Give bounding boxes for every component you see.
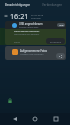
staticText: Anzeigen oder entfernen — [20, 53, 44, 56]
button[interactable]: Gesperrt — [6, 97, 14, 105]
staticText: Dateien übertragen — [19, 26, 39, 29]
button[interactable]: Teilen — [56, 53, 65, 59]
staticText: Sonntag — [31, 16, 41, 19]
button[interactable]: Startseite — [29, 113, 41, 125]
staticText: Fotos werden gesichert — [14, 30, 40, 33]
staticText: Benachrichtigungen — [5, 3, 31, 7]
staticText: Hilfe — [59, 24, 64, 27]
button[interactable]: Hilfe — [57, 23, 65, 27]
button[interactable]: Aufgenommene Fotos — [5, 46, 66, 60]
staticText: 07.07.2019 — [31, 13, 44, 16]
button[interactable]: Verbindungen — [35, 0, 70, 10]
button[interactable]: Entfernen — [46, 38, 65, 44]
staticText: Aufgenommene Fotos — [20, 49, 48, 53]
staticText: Fotos — [14, 41, 20, 44]
staticText: USB angeschlossen — [19, 22, 43, 26]
staticText: Entfernen — [50, 40, 62, 43]
staticText: 16:21 — [10, 11, 29, 20]
staticText: Verbindungen — [42, 3, 63, 7]
button[interactable]: Fotos werden gesichert — [5, 29, 66, 45]
staticText: fotos.google.com abrufbar — [14, 33, 40, 36]
button[interactable]: USB angeschlossen — [5, 21, 66, 29]
button[interactable]: Benachrichtigungen — [0, 0, 35, 10]
button[interactable]: Zurück — [9, 113, 21, 125]
button[interactable]: Übersicht — [50, 113, 62, 125]
